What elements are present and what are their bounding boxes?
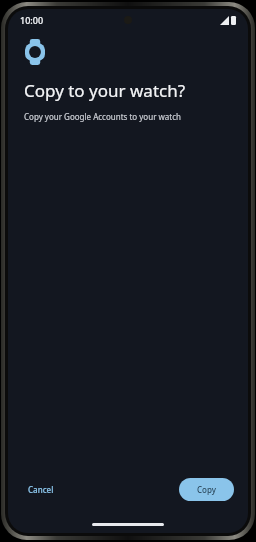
staticText: Copy your Google Accounts to your watch xyxy=(24,111,181,122)
button[interactable]: Cancel xyxy=(22,478,60,501)
other: Watch xyxy=(25,39,45,65)
staticText: Cancel xyxy=(28,484,54,495)
staticText: Copy xyxy=(197,484,216,495)
button[interactable]: Copy xyxy=(179,478,234,501)
staticText: 10:00 xyxy=(20,14,44,26)
staticText: Copy to your watch? xyxy=(24,79,186,102)
